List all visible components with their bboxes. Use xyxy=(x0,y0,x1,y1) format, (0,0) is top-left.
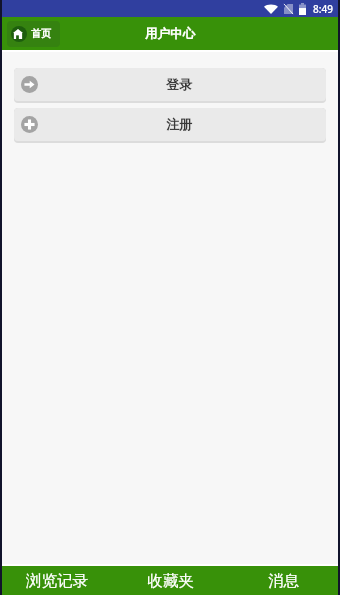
button[interactable]: 消息 xyxy=(227,566,340,595)
other: No SIM card xyxy=(284,4,293,14)
staticText: 注册 xyxy=(166,116,192,132)
staticText: 8:49 xyxy=(313,2,333,16)
button[interactable]: 收藏夹 xyxy=(114,566,227,595)
staticText: 首页 xyxy=(31,27,51,40)
button[interactable]: 浏览记录 xyxy=(0,566,114,595)
staticText: 登录 xyxy=(166,76,192,92)
staticText: 用户中心 xyxy=(145,26,195,42)
staticText: 收藏夹 xyxy=(147,571,194,591)
other: Wi-Fi xyxy=(264,4,278,14)
staticText: 消息 xyxy=(268,571,299,591)
button[interactable]: 首页 xyxy=(7,21,60,47)
button[interactable]: 注册 xyxy=(14,108,326,143)
staticText: 浏览记录 xyxy=(26,571,88,591)
other: Battery xyxy=(299,3,306,15)
button[interactable]: 登录 xyxy=(14,68,326,103)
